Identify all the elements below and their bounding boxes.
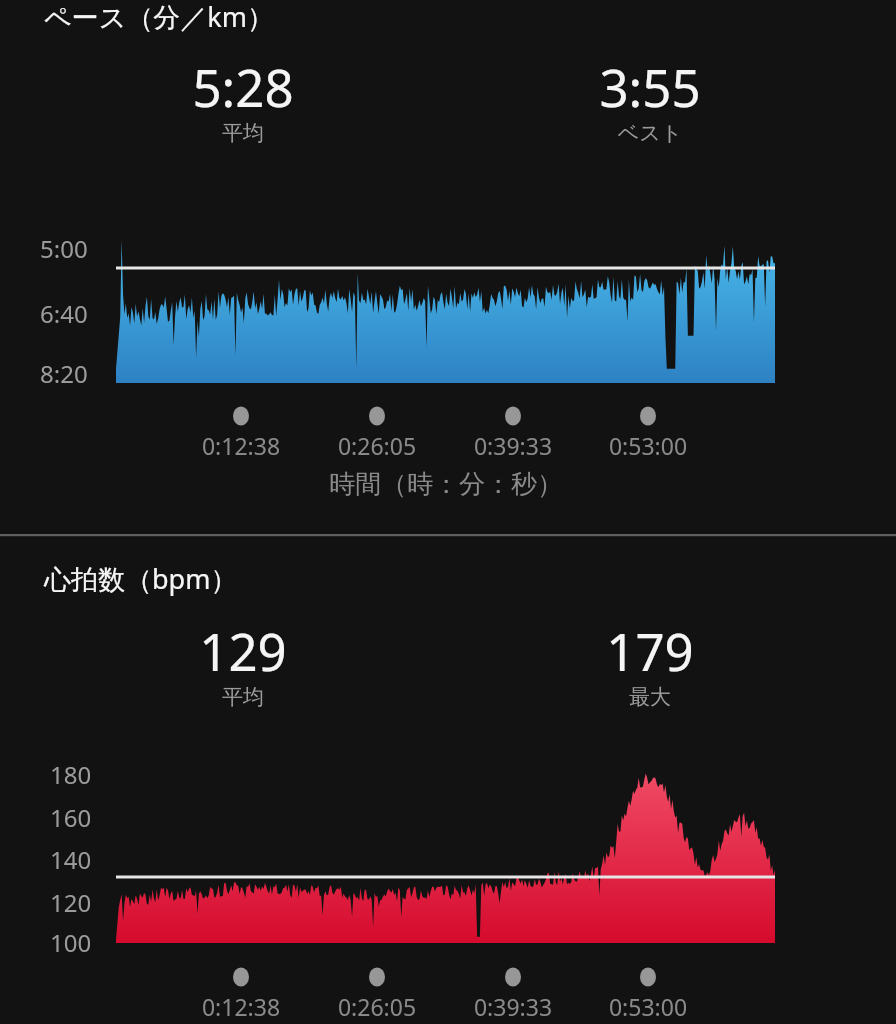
staticText: 心拍数（bpm） [44,560,238,597]
staticText: ペース（分／km） [44,0,274,35]
staticText: 0:39:33 [373,991,653,1022]
staticText: 180 [50,758,92,791]
staticText: 5:00 [40,232,88,265]
staticText: 5:28 [103,52,383,121]
staticText: 0:12:38 [101,430,381,461]
staticText: 120 [50,886,92,919]
staticText: 6:40 [40,297,88,330]
staticText: 平均 [103,120,383,146]
staticText: 0:39:33 [373,430,653,461]
button[interactable]: ペース チャート [0,0,896,534]
staticText: 160 [50,801,92,834]
staticText: ベスト [510,120,790,146]
staticText: 時間（時：分：秒） [186,468,706,501]
button[interactable]: 心拍数 チャート [0,536,896,1024]
staticText: 179 [510,616,790,685]
staticText: 8:20 [40,357,88,390]
staticText: 0:53:00 [508,991,788,1022]
staticText: 0:12:38 [101,991,381,1022]
staticText: 0:26:05 [237,430,517,461]
staticText: 0:26:05 [237,991,517,1022]
staticText: 0:53:00 [508,430,788,461]
staticText: 140 [50,843,92,876]
staticText: 100 [50,926,92,959]
staticText: 最大 [510,684,790,710]
staticText: 3:55 [510,52,790,121]
staticText: 129 [103,616,383,685]
staticText: 平均 [103,684,383,710]
